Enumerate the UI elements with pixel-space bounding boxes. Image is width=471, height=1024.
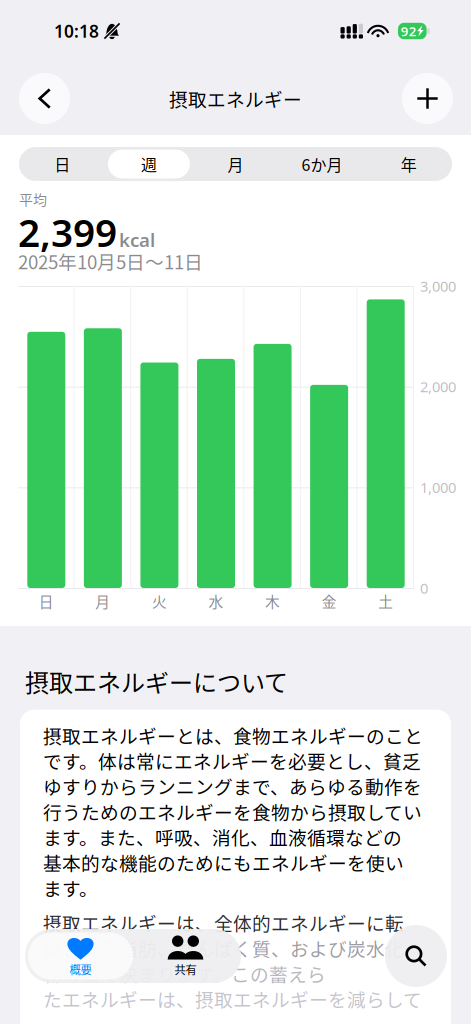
button[interactable]: 6か月 bbox=[279, 147, 365, 181]
staticText: 3,000 bbox=[420, 276, 456, 296]
staticText: 概要 bbox=[69, 961, 91, 977]
staticText: たエネルギーは、摂取エネルギーを減らして bbox=[43, 985, 422, 1012]
staticText: 金 bbox=[322, 590, 337, 612]
staticText: 92 bbox=[401, 22, 417, 40]
button[interactable]: 日 bbox=[19, 147, 106, 181]
staticText: です。体は常にエネルギーを必要とし、貧乏 bbox=[43, 747, 421, 774]
button[interactable]: 週 bbox=[106, 147, 192, 181]
staticText: 摂取エネルギーは、全体的エネルギーに転 bbox=[43, 909, 404, 936]
staticText: 摂取エネルギーについて bbox=[25, 664, 288, 699]
staticText: 週 bbox=[141, 152, 157, 176]
staticText: ゆすりからランニングまで、あらゆる動作を bbox=[43, 773, 422, 800]
staticText: ます。 bbox=[43, 874, 98, 901]
staticText: 火 bbox=[152, 590, 167, 612]
staticText: 換される脂肪、たんぱく質、および炭水化 bbox=[43, 935, 404, 962]
button[interactable]: 年 bbox=[365, 147, 452, 181]
button[interactable]: 追加 bbox=[402, 73, 453, 124]
staticText: 日 bbox=[39, 590, 54, 612]
staticText: 日 bbox=[54, 152, 70, 176]
button[interactable]: 検索 bbox=[385, 925, 447, 987]
staticText: 0 bbox=[420, 578, 428, 598]
staticText: 2,000 bbox=[420, 377, 456, 396]
staticText: kcal bbox=[119, 227, 155, 252]
staticText: 土 bbox=[378, 590, 393, 612]
staticText: 年 bbox=[401, 152, 417, 176]
staticText: ます。また、呼吸、消化、血液循環などの bbox=[43, 823, 402, 850]
staticText: 平均 bbox=[19, 189, 47, 209]
staticText: 行うためのエネルギーを食物から摂取してい bbox=[43, 798, 422, 825]
staticText: 2,399 bbox=[18, 206, 117, 258]
staticText: 木 bbox=[265, 590, 280, 612]
staticText: 摂取エネルギーとは、食物エネルギーのこと bbox=[43, 722, 423, 749]
staticText: 水 bbox=[208, 590, 223, 612]
staticText: 基本的な機能のためにもエネルギーを使い bbox=[43, 849, 404, 876]
staticText: 月 bbox=[227, 152, 243, 176]
staticText: 月 bbox=[95, 590, 110, 612]
staticText: 10:18 bbox=[54, 19, 99, 42]
button[interactable]: 共有 bbox=[133, 932, 238, 979]
button[interactable]: 概要 bbox=[28, 932, 133, 979]
staticText: 6か月 bbox=[302, 152, 343, 176]
button[interactable]: 月 bbox=[192, 147, 279, 181]
staticText: 摂取エネルギー bbox=[169, 85, 302, 112]
staticText: 1,000 bbox=[420, 478, 456, 497]
staticText: 2025年10月5日〜11日 bbox=[18, 247, 203, 274]
staticText: 物の量で決まります。この蓄えら bbox=[43, 960, 326, 987]
staticText: 共有 bbox=[174, 961, 196, 977]
button[interactable]: 戻る bbox=[19, 73, 70, 124]
